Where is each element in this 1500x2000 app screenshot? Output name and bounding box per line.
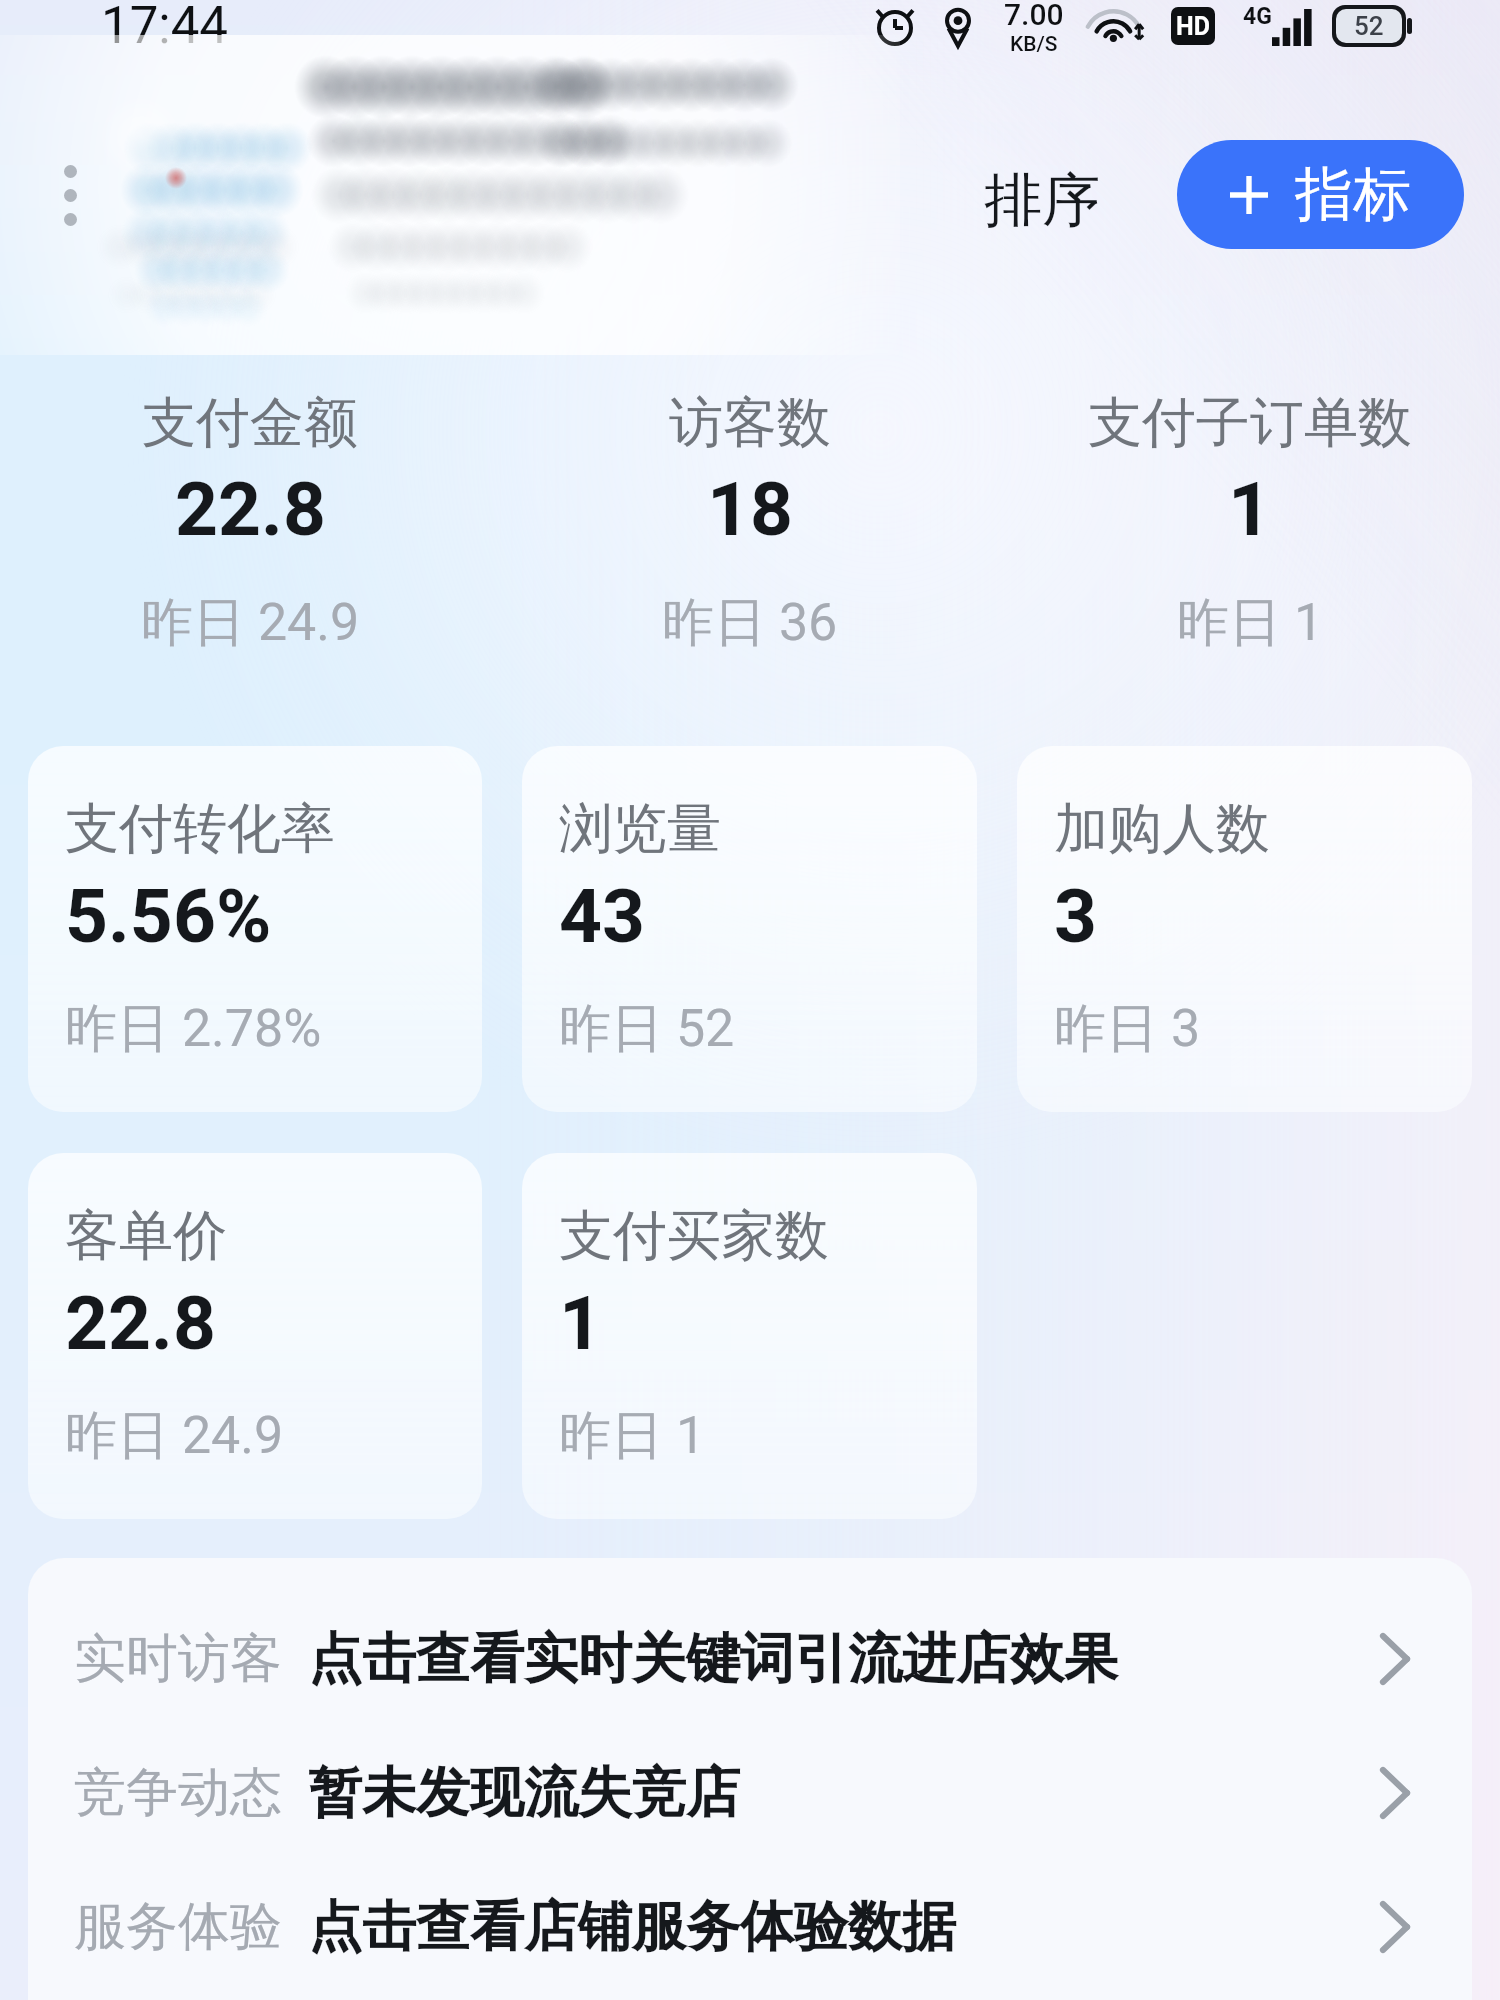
staticText: 加购人数 [1054,795,1270,863]
staticText: 服务体验 [74,1894,282,1960]
staticText: 昨日 2.78% [65,996,322,1062]
other: Open 竞争动态 [1380,1767,1410,1819]
staticText: 18 [707,465,794,553]
button[interactable]: 实时访客 [28,1592,1472,1726]
staticText: 昨日 1 [1177,590,1324,656]
staticText: 昨日 1 [559,1403,706,1469]
staticText: 排序 [984,164,1100,237]
staticText: 昨日 24.9 [141,590,360,656]
staticText: 5.56% [65,872,272,960]
staticText: 点击查看实时关键词引流进店效果 [308,1625,1118,1693]
button[interactable]: 加购人数 [1017,746,1472,1112]
staticText: 访客数 [669,389,831,457]
staticText: KB/S [1010,32,1058,55]
button[interactable]: 支付买家数 [522,1153,977,1519]
button[interactable]: 竞争动态 [28,1726,1472,1860]
staticText: 22.8 [175,465,326,553]
staticText: 昨日 52 [559,996,735,1062]
other: Open 服务体验 [1380,1901,1410,1953]
staticText: HD [1176,12,1210,41]
staticText: 竞争动态 [74,1760,282,1826]
staticText: 3 [1054,872,1098,960]
staticText: 支付子订单数 [1088,389,1412,457]
staticText: 浏览量 [559,795,721,863]
button[interactable]: 客单价 [28,1153,482,1519]
staticText: 1 [1228,465,1272,553]
button[interactable]: 支付金额 [0,389,500,656]
button[interactable]: 支付子订单数 [1000,389,1500,656]
staticText: 点击查看店铺服务体验数据 [308,1893,956,1961]
staticText: 昨日 3 [1054,996,1201,1062]
staticText: 52 [1354,11,1384,41]
staticText: 支付金额 [142,389,358,457]
staticText: 客单价 [65,1202,227,1270]
staticText: 1 [559,1279,603,1367]
button[interactable]: 指标 [1177,140,1464,249]
button[interactable]: More options [48,147,93,244]
button[interactable]: 浏览量 [522,746,977,1112]
button[interactable]: 访客数 [500,389,1000,656]
staticText: 实时访客 [74,1626,282,1692]
staticText: 支付转化率 [65,795,335,863]
button[interactable]: 排序 [966,150,1118,251]
staticText: 43 [559,872,646,960]
staticText: 支付买家数 [559,1202,829,1270]
staticText: 22.8 [65,1279,216,1367]
other: Open 实时访客 [1380,1633,1410,1685]
staticText: 7.00 [1004,0,1064,32]
button[interactable]: 支付转化率 [28,746,482,1112]
staticText: 17:44 [101,0,229,54]
staticText: 指标 [1295,158,1411,231]
button[interactable]: 服务体验 [28,1860,1472,1994]
staticText: 昨日 36 [662,590,838,656]
staticText: 暂未发现流失竞店 [308,1759,740,1827]
staticText: 4G [1243,3,1272,30]
staticText: 昨日 24.9 [65,1403,284,1469]
